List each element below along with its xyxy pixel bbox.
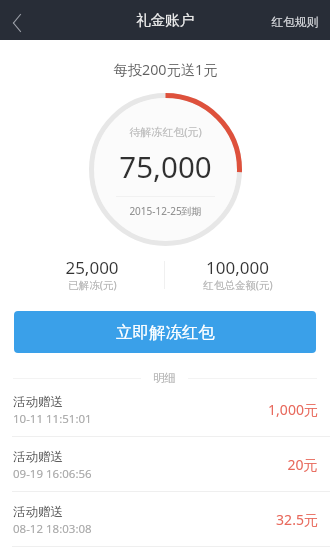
staticText: 25,000 — [65, 256, 119, 279]
staticText: 100,000 — [206, 256, 269, 279]
staticText: 75,000 — [119, 146, 212, 186]
staticText: 红包总金额(元) — [203, 278, 273, 292]
staticText: 待解冻红包(元) — [129, 124, 202, 139]
button[interactable]: 活动赠送 — [0, 382, 330, 437]
staticText: 1,000元 — [268, 400, 318, 419]
staticText: 2015-12-25到期 — [129, 204, 202, 218]
staticText: 立即解冻红包 — [116, 322, 215, 343]
staticText: 明细 — [153, 371, 176, 385]
staticText: 活动赠送 — [13, 449, 63, 465]
button[interactable]: Back — [0, 0, 36, 40]
staticText: 红包规则 — [271, 15, 319, 30]
staticText: 08-12 18:03:08 — [13, 521, 92, 537]
button[interactable]: 立即解冻红包 — [14, 311, 316, 353]
button[interactable]: 红包规则 — [258, 0, 330, 40]
staticText: 活动赠送 — [13, 504, 63, 520]
staticText: 32.5元 — [276, 510, 318, 529]
staticText: 10-11 11:51:01 — [13, 411, 92, 427]
staticText: 活动赠送 — [13, 394, 63, 410]
staticText: 每投200元送1元 — [113, 60, 218, 80]
staticText: 09-19 16:06:56 — [13, 466, 92, 482]
button[interactable]: 活动赠送 — [0, 492, 330, 547]
staticText: 礼金账户 — [136, 11, 194, 29]
staticText: 20元 — [287, 455, 318, 474]
button[interactable]: 活动赠送 — [0, 437, 330, 492]
staticText: 已解冻(元) — [68, 278, 117, 292]
